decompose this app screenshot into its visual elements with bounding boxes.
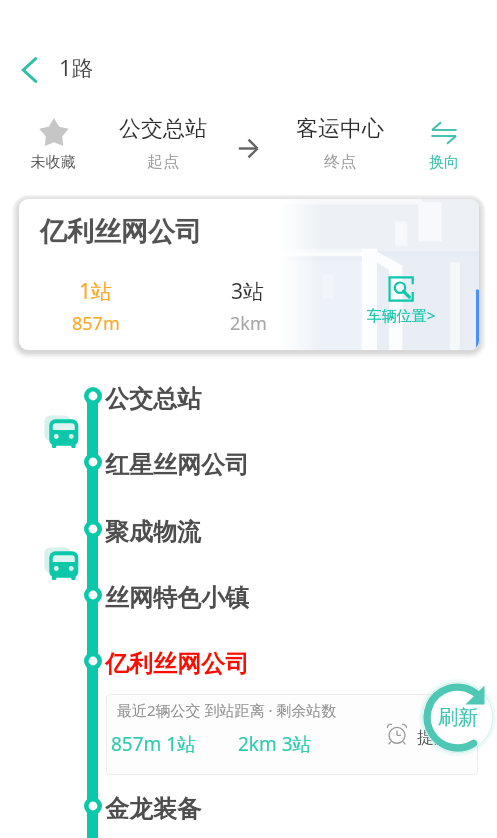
staticText: 提醒 — [417, 727, 451, 748]
staticText: 857m 1站 — [111, 731, 197, 757]
button[interactable]: 亿利丝网公司 — [0, 635, 497, 687]
button[interactable]: 亿利丝网公司 — [19, 199, 479, 350]
staticText: 1路 — [59, 52, 94, 82]
staticText: 亿利丝网公司 — [40, 215, 202, 249]
staticText: 客运中心 — [296, 115, 384, 143]
button[interactable]: 未收藏 — [13, 110, 93, 178]
button[interactable]: 换向 — [404, 112, 484, 178]
staticText: 2km 3站 — [238, 731, 312, 757]
staticText: 起点 — [147, 152, 179, 172]
staticText: 公交总站 — [119, 115, 207, 143]
button[interactable]: 公交总站 — [0, 370, 497, 422]
staticText: 最近2辆公交 到站距离 · 剩余站数 — [117, 700, 337, 720]
button[interactable]: Refresh — [419, 679, 496, 756]
button[interactable]: Back — [6, 46, 54, 94]
staticText: 终点 — [324, 152, 356, 172]
staticText: 未收藏 — [13, 153, 93, 172]
staticText: 换向 — [404, 153, 484, 172]
button[interactable]: 聚成物流 — [0, 503, 497, 555]
staticText: 丝网特色小镇 — [105, 583, 249, 613]
staticText: 金龙装备 — [105, 794, 201, 824]
staticText: 红星丝网公司 — [105, 450, 249, 480]
button[interactable]: 金龙装备 — [0, 780, 497, 832]
staticText: 亿利丝网公司 — [105, 649, 249, 679]
staticText: 刷新 — [438, 705, 478, 730]
button[interactable]: 车辆位置> — [356, 273, 446, 325]
staticText: 1站 — [79, 277, 113, 306]
button[interactable]: 最近2辆公交 到站距离 · 剩余站数 — [107, 695, 477, 774]
button[interactable]: 丝网特色小镇 — [0, 569, 497, 621]
staticText: 857m — [72, 311, 120, 336]
staticText: 公交总站 — [105, 384, 201, 414]
button[interactable]: 红星丝网公司 — [0, 436, 497, 488]
staticText: 车辆位置> — [356, 305, 446, 325]
staticText: 3站 — [231, 277, 265, 306]
staticText: 聚成物流 — [105, 517, 201, 547]
staticText: 2km — [230, 311, 267, 336]
